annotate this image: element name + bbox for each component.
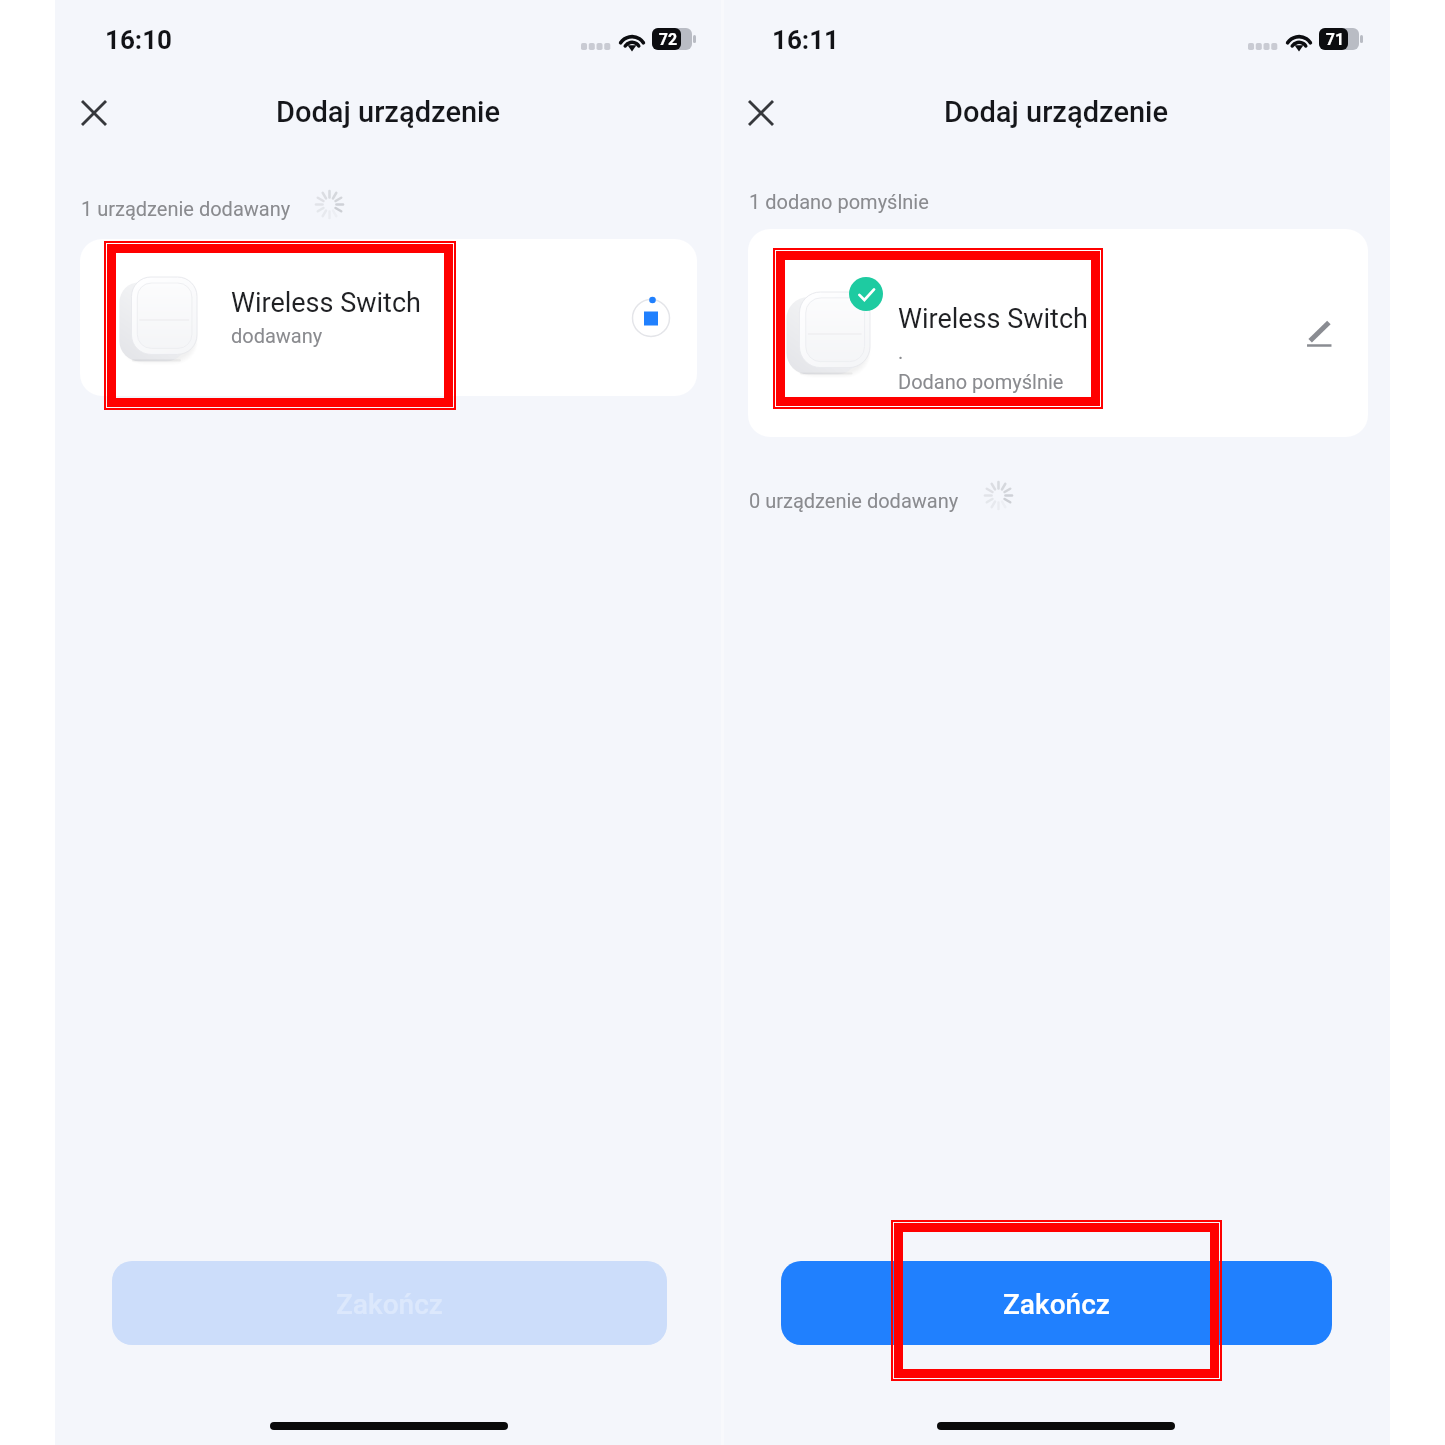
staticText: 16:10 [105,25,173,55]
staticText: dodawany [231,324,323,347]
staticText: 16:11 [772,25,840,55]
button[interactable]: Close [733,85,789,141]
staticText: . [898,340,904,363]
button[interactable]: Wireless Switch [80,239,697,396]
staticText: Wireless Switch [898,303,1088,335]
button[interactable]: Zakończ [112,1261,667,1345]
staticText: Dodano pomyślnie [898,370,1064,393]
staticText: Zakończ [1003,1288,1110,1321]
button[interactable]: Zakończ [781,1261,1332,1345]
button[interactable]: Close [66,85,122,141]
staticText: Dodaj urządzenie [944,95,1169,129]
staticText: Zakończ [336,1288,443,1321]
staticText: 1 urządzenie dodawany [81,197,291,220]
button[interactable]: Wireless Switch [748,229,1368,437]
staticText: 72 [653,30,683,49]
staticText: 71 [1320,30,1350,49]
button[interactable]: Edit [1296,311,1341,356]
staticText: 1 dodano pomyślnie [749,190,929,213]
staticText: Wireless Switch [231,287,421,319]
staticText: Dodaj urządzenie [276,95,501,129]
staticText: 0 urządzenie dodawany [749,489,959,512]
